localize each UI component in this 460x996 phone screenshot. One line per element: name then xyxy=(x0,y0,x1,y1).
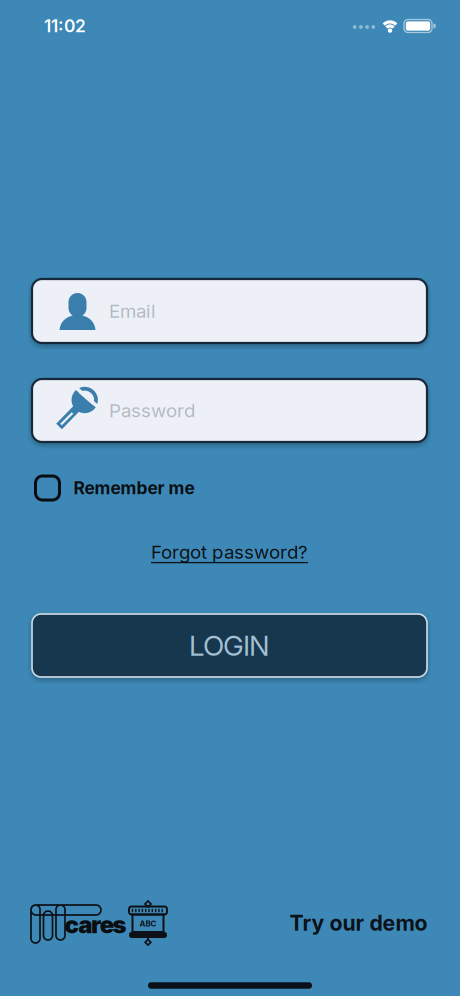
staticText: Forgot password? xyxy=(151,541,308,563)
button[interactable]: Password xyxy=(32,379,427,442)
staticText: Password xyxy=(109,399,195,421)
button[interactable]: Remember me xyxy=(32,476,427,500)
staticText: Remember me xyxy=(73,478,194,498)
button[interactable]: LOGIN xyxy=(32,614,427,677)
staticText: Email xyxy=(109,300,156,322)
staticText: Try our demo xyxy=(289,910,427,936)
button[interactable]: Forgot password? xyxy=(151,541,308,563)
staticText: cares xyxy=(65,910,126,939)
staticText: 11:02 xyxy=(44,16,86,36)
button[interactable]: Try our demo xyxy=(289,910,427,936)
staticText: ABC xyxy=(139,919,156,928)
staticText: LOGIN xyxy=(189,629,270,662)
button[interactable]: Email xyxy=(32,279,427,343)
